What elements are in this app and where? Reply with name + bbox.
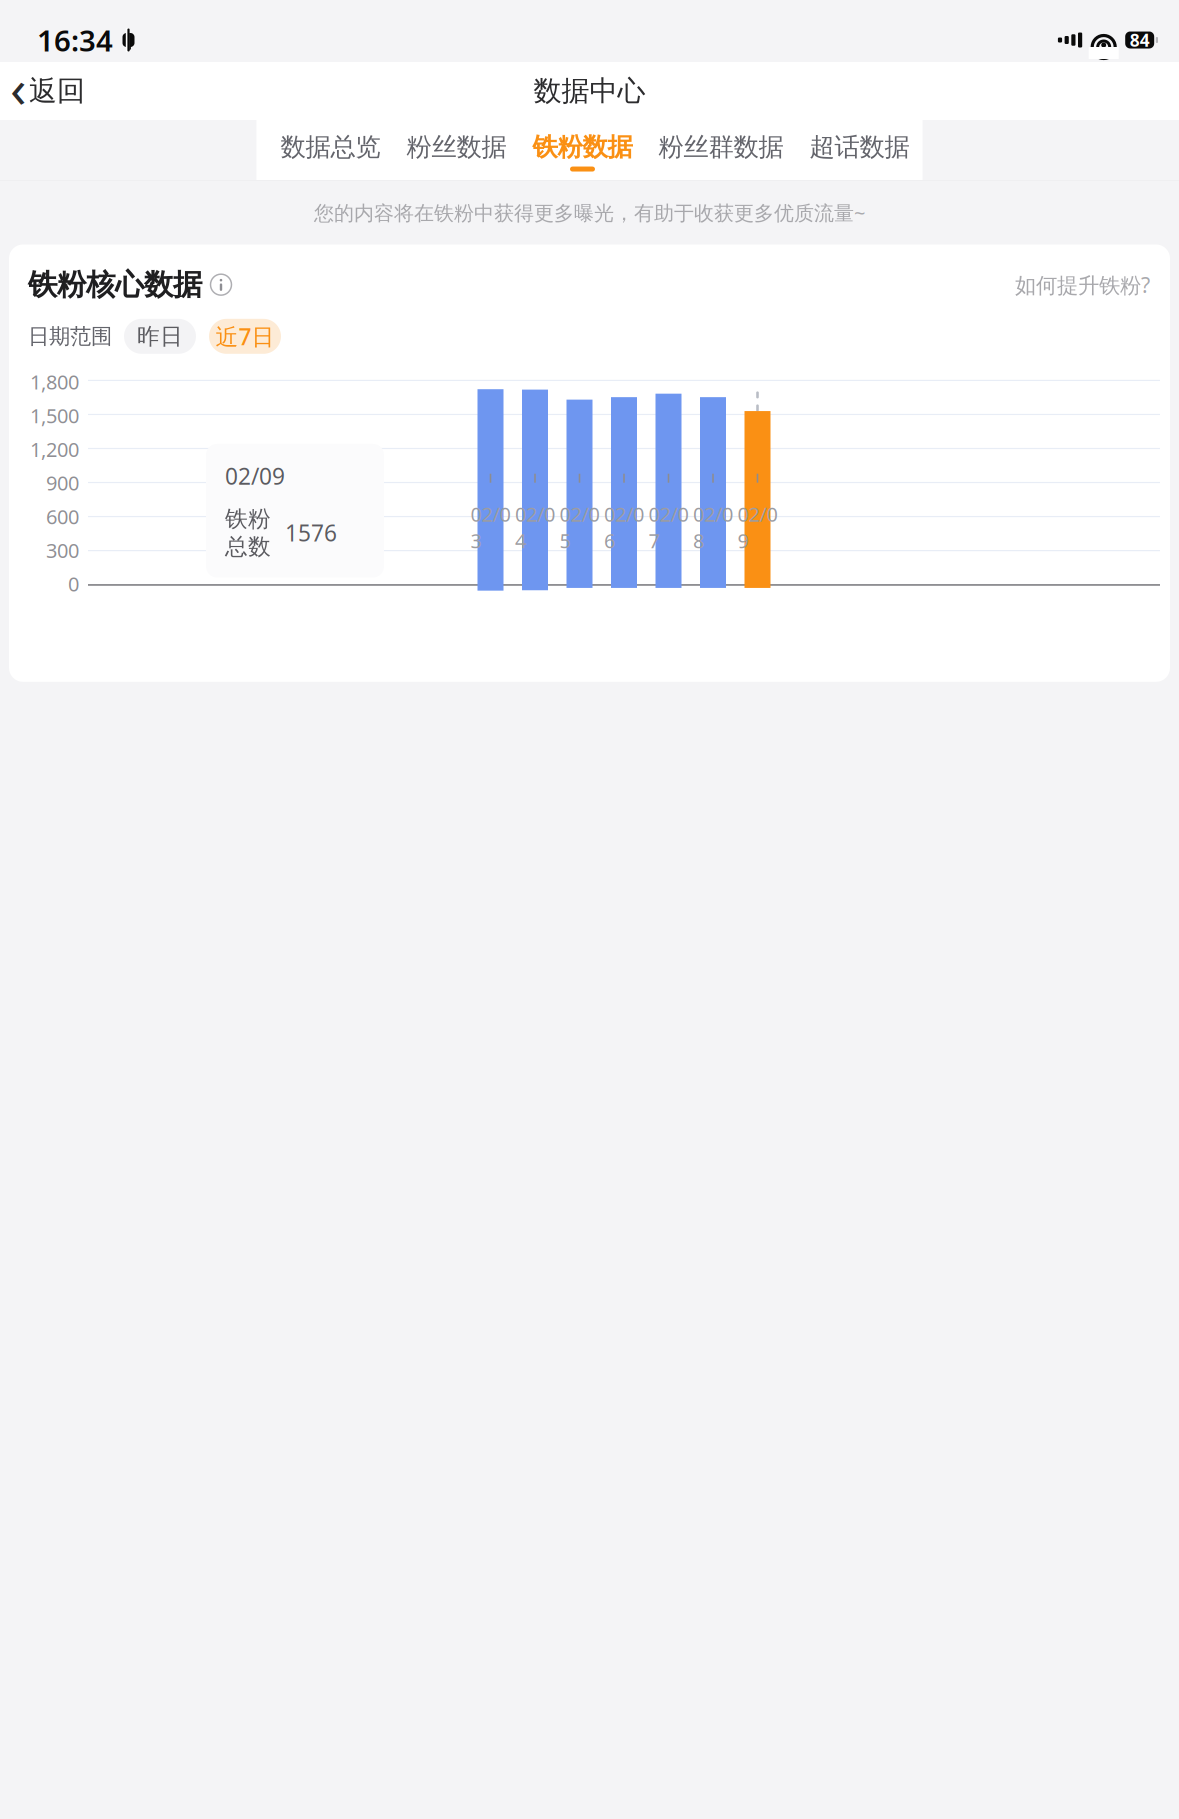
staticText: 02/07 [648,501,688,554]
staticText: 返回 [29,74,85,108]
staticText: 粉丝群数据 [658,131,783,162]
staticText: 您的内容将在铁粉中获得更多曝光，有助于收获更多优质流量~ [314,199,865,226]
staticText: 昨日 [137,322,183,350]
button[interactable]: 昨日 [124,319,196,354]
staticText: 1,200 [30,436,79,462]
staticText: 0 [68,571,79,597]
staticText: 84 [1130,28,1150,51]
staticText: ‹ [10,52,27,122]
staticText: 粉丝数据 [406,131,506,162]
staticText: 02/08 [693,501,733,554]
staticText: 铁粉数据 [532,131,632,162]
staticText: 300 [46,537,79,563]
staticText: 日期范围 [28,323,112,349]
staticText: 02/04 [515,501,555,554]
staticText: 数据总览 [280,131,380,162]
staticText: 超话数据 [809,131,909,162]
button[interactable]: 近7日 [209,319,281,354]
button[interactable]: 粉丝群数据 [645,120,796,180]
staticText: 1,500 [30,402,79,429]
staticText: 1576 [285,518,337,548]
staticText: 如何提升铁粉? [1015,270,1150,299]
button[interactable]: 数据总览 [267,120,393,180]
button[interactable]: 如何提升铁粉? [1015,265,1150,304]
staticText: 02/06 [604,501,644,554]
staticText: 1,800 [30,369,79,395]
staticText: 900 [46,470,79,496]
button[interactable]: 铁粉数据 [519,120,645,180]
button[interactable]: 超话数据 [796,120,922,180]
staticText: 铁粉核心数据 [28,267,202,303]
staticText: 数据中心 [533,74,645,108]
staticText: 02/03 [470,501,510,554]
staticText: 02/05 [559,501,599,554]
staticText: 02/09 [225,461,285,491]
button[interactable]: ‹ [0,68,96,114]
staticText: 02/09 [737,501,777,554]
button[interactable]: 粉丝数据 [393,120,519,180]
staticText: 16:34 [37,20,113,59]
staticText: 近7日 [215,321,274,351]
button[interactable]: 铁粉核心数据说明 [202,269,232,301]
staticText: 600 [46,503,79,530]
staticText: 铁粉总数 [225,505,271,561]
